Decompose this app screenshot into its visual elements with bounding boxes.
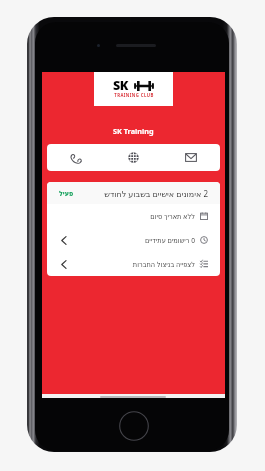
staticText: פעיל: [59, 190, 74, 197]
button[interactable]: Call: [47, 144, 104, 171]
staticText: ללא תאריך סיום: [150, 212, 195, 221]
button[interactable]: Website: [104, 144, 162, 171]
staticText: 0 רישומים עתידיים: [144, 236, 195, 245]
staticText: TRAINING CLUB: [114, 92, 154, 98]
button[interactable]: לצפייה בניצול החברות: [47, 252, 220, 276]
button[interactable]: Email: [162, 144, 220, 171]
staticText: SK: [113, 77, 129, 94]
staticText: SK Training: [113, 126, 154, 136]
button[interactable]: 0 רישומים עתידיים: [47, 228, 220, 252]
staticText: 2 אימונים אישיים בשבוע לחודש: [104, 188, 208, 199]
button[interactable]: ללא תאריך סיום: [47, 204, 220, 228]
staticText: לצפייה בניצול החברות: [132, 260, 195, 269]
